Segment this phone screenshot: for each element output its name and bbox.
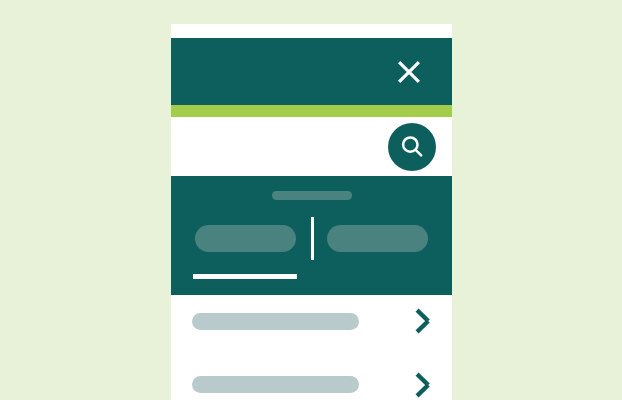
other: Open (404, 369, 440, 400)
button[interactable]: Open (171, 305, 452, 337)
button[interactable]: Close (387, 50, 431, 94)
button[interactable]: Search (388, 123, 436, 171)
button[interactable]: Open (171, 369, 452, 400)
other: Open (404, 305, 440, 337)
